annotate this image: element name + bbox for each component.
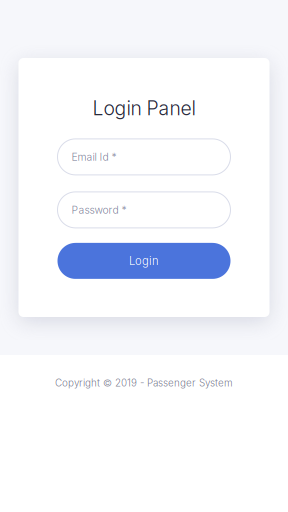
staticText: Password * [71, 204, 126, 216]
button[interactable]: Login [57, 243, 230, 279]
button[interactable]: Email Id * [57, 139, 230, 175]
staticText: Email Id * [71, 151, 116, 163]
button[interactable]: Password * [57, 192, 230, 228]
staticText: Login Panel [92, 96, 195, 120]
staticText: Copyright © 2019 - Passenger System [55, 377, 233, 389]
staticText: Login [129, 254, 159, 268]
